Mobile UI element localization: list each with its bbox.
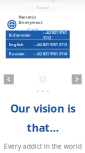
button[interactable]: English (6, 40, 70, 49)
button[interactable]: Indonesian (6, 30, 70, 39)
staticText: : +62 821 9761 3112 (43, 30, 67, 40)
button[interactable]: English (48, 0, 60, 2)
staticText: Russian (9, 51, 25, 56)
staticText: Indonesian (9, 32, 31, 38)
button[interactable]: Call (26, 26, 38, 35)
button[interactable]: Indonesian (26, 0, 44, 2)
button[interactable]: Previous slide (4, 74, 14, 84)
staticText: Russian (36, 5, 49, 10)
staticText: : +62 821 9761 3113 (34, 42, 67, 47)
button[interactable]: Russian (36, 5, 49, 10)
button[interactable]: Next slide (72, 74, 82, 84)
staticText: Our vision is (10, 101, 75, 115)
staticText: that... (27, 120, 59, 135)
button[interactable]: Russian (6, 49, 70, 58)
staticText: Every addict in the world (4, 142, 82, 150)
staticText: Indonesian (26, 0, 44, 2)
staticText: Call (26, 26, 38, 35)
staticText: English (9, 42, 24, 47)
staticText: Narcotics Anonymous (18, 14, 42, 25)
staticText: : +62 821 9761 3114 (34, 51, 67, 56)
staticText: English (48, 0, 60, 2)
